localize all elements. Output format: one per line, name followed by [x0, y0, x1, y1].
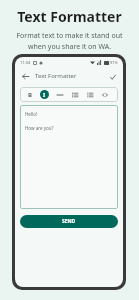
button[interactable]: Strikethrough [55, 90, 64, 99]
button[interactable]: Done [107, 71, 118, 82]
staticText: 91% [110, 60, 118, 65]
button[interactable]: Italic [40, 90, 49, 99]
button[interactable]: Bulleted list [70, 90, 79, 99]
staticText: 11:04 [20, 60, 31, 65]
staticText: Text Formatter [35, 72, 77, 80]
button[interactable]: Bold [25, 90, 34, 99]
button[interactable]: Code [100, 90, 109, 99]
staticText: Format text to make it stand out when yo… [16, 31, 123, 51]
staticText: How are you? [25, 125, 54, 131]
staticText: SEND [62, 218, 76, 225]
staticText: B [28, 91, 32, 99]
button[interactable]: Back [20, 71, 31, 82]
button[interactable]: SEND [20, 215, 118, 228]
staticText: Hello! [25, 111, 38, 117]
button[interactable]: Numbered list [85, 90, 94, 99]
staticText: Text Formatter [17, 7, 122, 26]
button[interactable]: Hello! [20, 105, 118, 209]
staticText: I [43, 91, 46, 98]
